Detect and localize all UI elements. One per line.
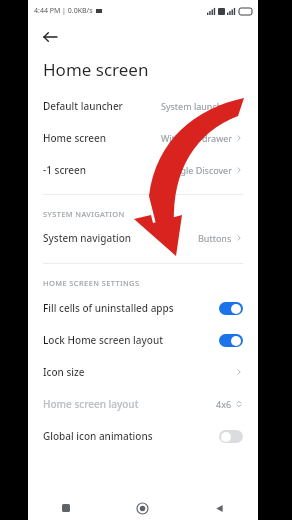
staticText: SYSTEM NAVIGATION: [43, 209, 125, 219]
button[interactable]: Back: [28, 22, 258, 52]
staticText: Fill cells of uninstalled apps: [43, 301, 174, 315]
button[interactable]: Home screen: [28, 122, 258, 154]
button[interactable]: Home: [104, 496, 181, 520]
staticText: -1 screen: [43, 163, 87, 177]
button[interactable]: Default launcher: [28, 90, 258, 122]
button[interactable]: Recents: [28, 496, 104, 520]
button[interactable]: Back: [181, 496, 258, 520]
staticText: Buttons: [198, 232, 232, 244]
staticText: Lock Home screen layout: [43, 333, 164, 347]
button[interactable]: Fill cells of uninstalled apps: [28, 292, 258, 324]
staticText: Google Discover: [163, 164, 232, 176]
button[interactable]: Icon size: [28, 356, 258, 388]
staticText: 4:44 PM | 0.0KB/s: [34, 6, 93, 16]
staticText: 4x6: [216, 398, 232, 410]
staticText: Home screen: [43, 58, 149, 81]
staticText: With App drawer: [161, 132, 232, 144]
staticText: HOME SCREEN SETTINGS: [43, 278, 140, 288]
staticText: System launcher: [161, 100, 232, 112]
button[interactable]: Lock Home screen layout: [28, 324, 258, 356]
button[interactable]: System navigation: [28, 223, 258, 253]
button[interactable]: -1 screen: [28, 154, 258, 186]
staticText: Home screen layout: [43, 397, 139, 411]
staticText: Home screen: [43, 131, 106, 145]
staticText: Global icon animations: [43, 429, 153, 443]
staticText: Default launcher: [43, 99, 123, 113]
button[interactable]: Home screen layout: [28, 388, 258, 420]
staticText: System navigation: [43, 231, 132, 245]
button[interactable]: Global icon animations: [28, 420, 258, 452]
staticText: Icon size: [43, 365, 85, 379]
